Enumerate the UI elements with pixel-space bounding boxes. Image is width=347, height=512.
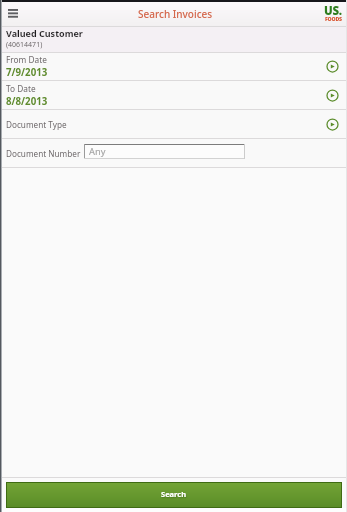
staticText: FOODS [325, 15, 342, 22]
button[interactable]: Any [84, 144, 245, 159]
button[interactable]: From Date [0, 53, 347, 80]
button[interactable]: Search [6, 482, 342, 508]
staticText: 8/8/2013 [6, 95, 48, 108]
staticText: Document Number [6, 148, 81, 159]
button[interactable]: To Date [0, 81, 347, 109]
staticText: Search Invoices [138, 7, 213, 21]
staticText: Valued Customer [6, 27, 83, 39]
staticText: Search [161, 489, 187, 499]
button[interactable]: Menu [4, 4, 22, 22]
staticText: Document Type [6, 119, 326, 130]
staticText: Any [89, 145, 106, 158]
staticText: To Date [6, 83, 36, 94]
staticText: From Date [6, 54, 47, 65]
staticText: US. [324, 3, 342, 19]
button[interactable]: Document Type [0, 110, 347, 138]
staticText: (40614471) [6, 40, 43, 50]
staticText: 7/9/2013 [6, 66, 48, 79]
